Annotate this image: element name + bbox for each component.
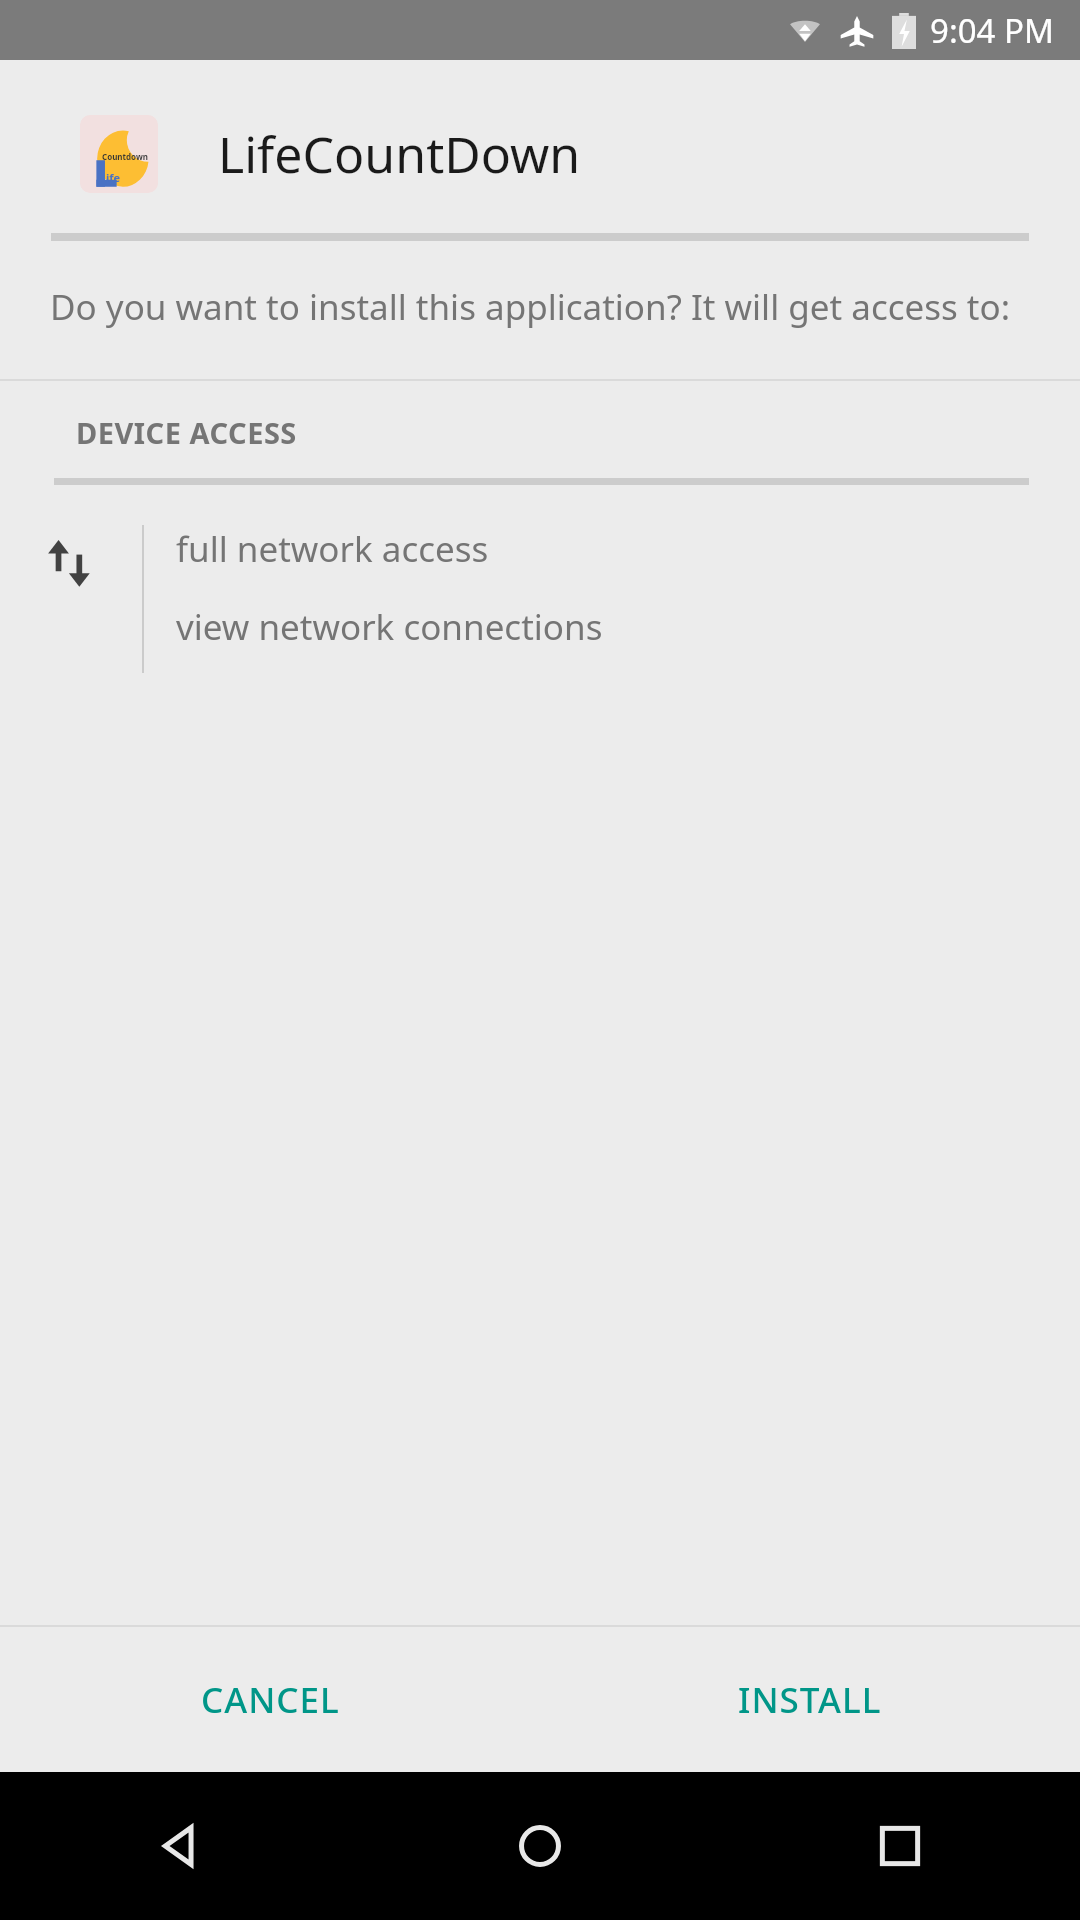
staticText: INSTALL	[738, 1676, 882, 1724]
staticText: LifeCountDown	[218, 120, 581, 188]
button[interactable]: Recents	[720, 1772, 1080, 1920]
staticText: CANCEL	[201, 1676, 340, 1724]
button[interactable]: Back	[0, 1772, 360, 1920]
button[interactable]: Home	[360, 1772, 720, 1920]
staticText: 9:04 PM	[930, 8, 1054, 53]
staticText: view network connections	[176, 603, 603, 651]
staticText: Countdown	[102, 151, 148, 162]
staticText: ife	[106, 170, 121, 185]
staticText: full network access	[176, 525, 489, 573]
staticText: Do you want to install this application?…	[50, 283, 1032, 331]
button[interactable]: INSTALL	[540, 1627, 1080, 1772]
button[interactable]: CANCEL	[0, 1627, 540, 1772]
staticText: DEVICE ACCESS	[76, 413, 297, 452]
